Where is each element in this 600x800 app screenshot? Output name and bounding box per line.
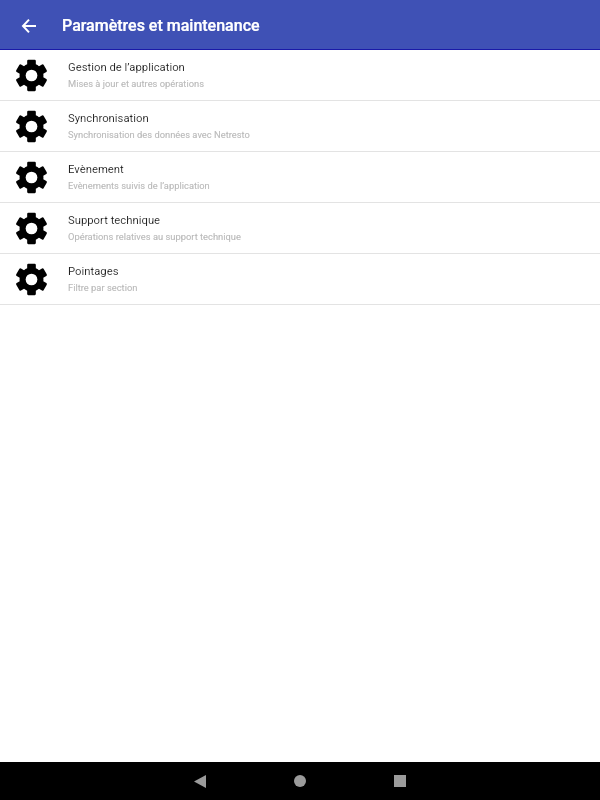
staticText: Gestion de l’application bbox=[68, 61, 185, 74]
staticText: Evènement bbox=[68, 163, 124, 176]
staticText: Support technique bbox=[68, 214, 161, 227]
button[interactable]: Support technique bbox=[0, 203, 600, 253]
button[interactable]: Back bbox=[150, 762, 250, 800]
button[interactable]: Pointages bbox=[0, 254, 600, 304]
button[interactable]: Home bbox=[250, 762, 350, 800]
staticText: Pointages bbox=[68, 265, 119, 278]
button[interactable]: Gestion de l’application bbox=[0, 50, 600, 100]
staticText: Opérations relatives au support techniqu… bbox=[68, 231, 241, 242]
button[interactable]: Evènement bbox=[0, 152, 600, 202]
button[interactable]: Synchronisation bbox=[0, 101, 600, 151]
button[interactable]: Navigate up bbox=[0, 1, 48, 49]
staticText: Mises à jour et autres opérations bbox=[68, 78, 204, 89]
staticText: Synchronisation des données avec Netrest… bbox=[68, 129, 250, 140]
staticText: Filtre par section bbox=[68, 282, 138, 293]
button[interactable]: Recent apps bbox=[350, 762, 450, 800]
staticText: Synchronisation bbox=[68, 112, 149, 125]
staticText: Evènements suivis de l’application bbox=[68, 180, 210, 191]
staticText: Paramètres et maintenance bbox=[62, 16, 260, 35]
